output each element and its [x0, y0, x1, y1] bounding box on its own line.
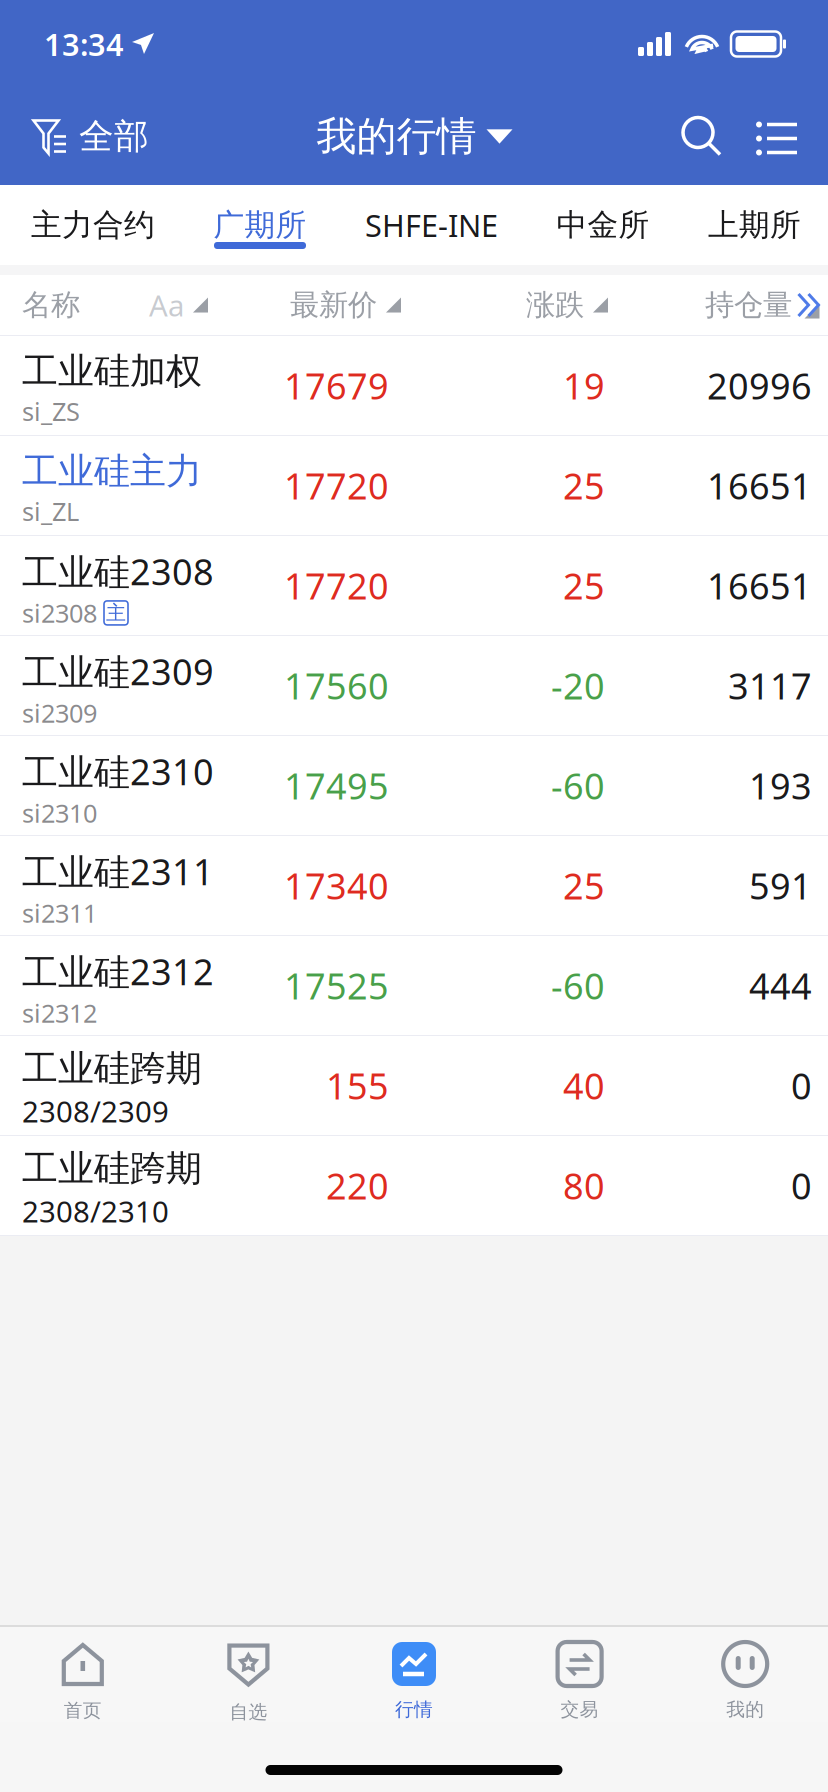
staticText: 工业硅2309: [22, 647, 214, 695]
button[interactable]: 工业硅主力: [0, 436, 828, 536]
staticText: si2311: [22, 896, 97, 930]
staticText: 17340: [284, 862, 389, 909]
button[interactable]: 涨跌: [526, 287, 705, 323]
staticText: 80: [563, 1162, 605, 1209]
staticText: -60: [551, 762, 605, 809]
staticText: 25: [563, 562, 605, 609]
staticText: 工业硅加权: [22, 349, 202, 393]
staticText: 工业硅2312: [22, 947, 214, 995]
staticText: 17525: [284, 962, 389, 1009]
staticText: si_ZL: [22, 494, 79, 528]
button[interactable]: 持仓量: [705, 287, 828, 323]
staticText: 591: [749, 862, 812, 909]
staticText: 最新价: [290, 287, 377, 323]
button[interactable]: SHFE-INE: [365, 185, 498, 265]
button[interactable]: 交易: [497, 1627, 662, 1722]
button[interactable]: 最新价: [290, 287, 526, 323]
staticText: 我的: [726, 1698, 764, 1721]
staticText: 工业硅2311: [22, 847, 214, 895]
staticText: 17560: [284, 662, 389, 709]
staticText: 25: [563, 862, 605, 909]
staticText: si2309: [22, 696, 97, 730]
button[interactable]: 中金所: [556, 185, 649, 265]
staticText: 涨跌: [526, 287, 584, 323]
button[interactable]: 首页: [0, 1627, 166, 1722]
staticText: Aa: [149, 285, 184, 324]
button[interactable]: 我的: [662, 1627, 828, 1722]
staticText: 主力合约: [31, 206, 155, 244]
button[interactable]: 行情: [331, 1627, 497, 1722]
button[interactable]: 全部: [0, 88, 165, 185]
staticText: 2308/2309: [22, 1092, 169, 1131]
staticText: 首页: [64, 1699, 102, 1722]
staticText: 中金所: [556, 206, 649, 244]
staticText: 上期所: [708, 206, 801, 244]
button[interactable]: 工业硅2309: [0, 636, 828, 736]
staticText: 行情: [395, 1698, 433, 1721]
staticText: 主: [106, 601, 126, 625]
button[interactable]: 主力合约: [31, 185, 155, 265]
staticText: 工业硅2308: [22, 547, 214, 595]
staticText: 自选: [229, 1700, 267, 1723]
staticText: si_ZS: [22, 394, 80, 428]
staticText: 17495: [284, 762, 389, 809]
staticText: 工业硅跨期: [22, 1146, 202, 1191]
button[interactable]: 我的行情: [316, 88, 512, 185]
staticText: 工业硅跨期: [22, 1046, 202, 1091]
staticText: 工业硅主力: [22, 449, 202, 493]
button[interactable]: 搜索: [664, 88, 740, 185]
staticText: 全部: [79, 115, 149, 158]
button[interactable]: 工业硅2310: [0, 736, 828, 836]
button[interactable]: 工业硅2308: [0, 536, 828, 636]
staticText: 17720: [284, 462, 389, 509]
staticText: SHFE-INE: [365, 205, 498, 245]
button[interactable]: 工业硅跨期: [0, 1136, 828, 1236]
button[interactable]: 工业硅2312: [0, 936, 828, 1036]
staticText: 17720: [284, 562, 389, 609]
button[interactable]: 上期所: [708, 185, 801, 265]
button[interactable]: 列表: [740, 88, 816, 185]
button[interactable]: 工业硅跨期: [0, 1036, 828, 1136]
staticText: 13:34: [44, 24, 124, 64]
button[interactable]: 自选: [166, 1627, 331, 1722]
staticText: 0: [791, 1162, 812, 1209]
staticText: 444: [749, 962, 812, 1009]
staticText: 交易: [561, 1698, 599, 1721]
staticText: -20: [551, 662, 605, 709]
staticText: si2312: [22, 996, 97, 1030]
staticText: 19: [563, 362, 605, 409]
staticText: -60: [551, 962, 605, 1009]
button[interactable]: Aa: [149, 285, 290, 324]
staticText: 工业硅2310: [22, 747, 214, 795]
staticText: 155: [326, 1062, 389, 1109]
button[interactable]: 广期所: [213, 185, 306, 265]
staticText: 名称: [22, 287, 80, 323]
staticText: 17679: [284, 362, 389, 409]
staticText: 2308/2310: [22, 1192, 169, 1231]
staticText: si2310: [22, 796, 97, 830]
staticText: 25: [563, 462, 605, 509]
staticText: 广期所: [213, 206, 306, 244]
button[interactable]: 工业硅加权: [0, 336, 828, 436]
staticText: 我的行情: [316, 112, 476, 161]
button[interactable]: 工业硅2311: [0, 836, 828, 936]
staticText: 持仓量: [705, 287, 792, 323]
staticText: si2308: [22, 596, 97, 630]
staticText: 20996: [707, 362, 812, 409]
staticText: 220: [326, 1162, 389, 1209]
staticText: 3117: [728, 662, 812, 709]
staticText: 16651: [707, 462, 812, 509]
staticText: 40: [563, 1062, 605, 1109]
staticText: 16651: [707, 562, 812, 609]
staticText: 193: [749, 762, 812, 809]
staticText: 0: [791, 1062, 812, 1109]
